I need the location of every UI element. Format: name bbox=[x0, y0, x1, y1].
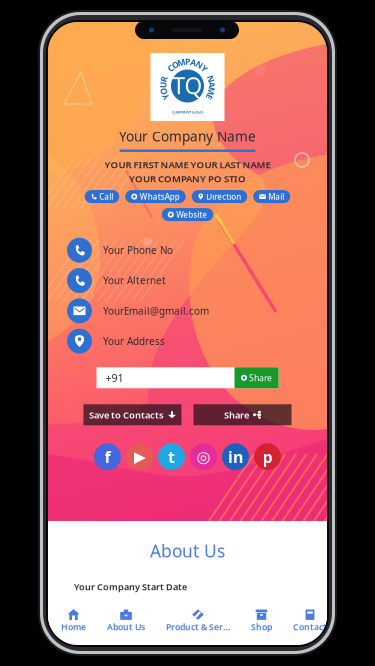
staticText: P bbox=[185, 56, 190, 67]
button[interactable]: Pinterest bbox=[254, 443, 281, 470]
staticText: A bbox=[209, 79, 215, 91]
staticText: YourEmail@gmail.com bbox=[103, 304, 209, 317]
staticText bbox=[166, 67, 168, 79]
staticText: Product & Services bbox=[166, 621, 230, 633]
staticText: O bbox=[160, 85, 167, 97]
staticText: Your Phone No bbox=[103, 243, 173, 257]
staticText: f bbox=[104, 446, 110, 468]
staticText: O bbox=[172, 59, 179, 70]
button[interactable]: YouTube bbox=[126, 443, 153, 470]
staticText: N bbox=[207, 73, 214, 84]
staticText: Shop bbox=[251, 621, 272, 633]
button[interactable]: Shop bbox=[251, 609, 272, 633]
button[interactable]: Home bbox=[61, 609, 86, 633]
button[interactable]: Mail bbox=[253, 190, 290, 203]
button[interactable]: Website bbox=[162, 208, 213, 221]
staticText: Your Company Name bbox=[119, 127, 256, 145]
staticText: Website bbox=[176, 209, 207, 220]
staticText: Call bbox=[99, 191, 113, 202]
staticText: Share bbox=[249, 372, 272, 384]
staticText: YOUR COMPANY PO STIO bbox=[129, 172, 246, 185]
staticText: Your Address bbox=[103, 334, 165, 348]
staticText: +91 bbox=[105, 370, 123, 385]
staticText: E bbox=[207, 91, 212, 103]
staticText: Save to Contacts bbox=[89, 408, 164, 421]
staticText: in bbox=[228, 446, 243, 468]
staticText: C bbox=[168, 63, 173, 74]
button[interactable]: About Us bbox=[107, 609, 145, 633]
button[interactable]: Direction bbox=[192, 190, 247, 203]
staticText: COMPANY LOGO bbox=[172, 109, 203, 115]
staticText: N bbox=[196, 59, 203, 70]
staticText: Mail bbox=[268, 191, 284, 202]
button[interactable]: Contact bbox=[293, 609, 327, 633]
button[interactable]: LinkedIn bbox=[222, 443, 249, 470]
button[interactable]: Share bbox=[193, 404, 291, 425]
button[interactable]: Product & Services bbox=[166, 609, 230, 633]
button[interactable]: Instagram bbox=[190, 443, 217, 470]
staticText: TQ bbox=[172, 70, 202, 101]
staticText: Your Company Start Date bbox=[74, 581, 187, 593]
staticText: ▶ bbox=[133, 447, 145, 466]
staticText bbox=[207, 67, 209, 79]
button[interactable]: Your Address bbox=[67, 326, 308, 356]
staticText: Contact bbox=[293, 621, 327, 633]
staticText: A bbox=[191, 56, 197, 68]
button[interactable]: Your Phone No bbox=[67, 235, 308, 265]
staticText: Share bbox=[224, 408, 249, 421]
staticText: Your Alternet bbox=[103, 274, 166, 287]
staticText: t bbox=[168, 446, 175, 468]
staticText: Y bbox=[163, 91, 168, 103]
staticText: Y bbox=[202, 62, 207, 74]
staticText: U bbox=[160, 79, 166, 91]
button[interactable]: WhatsApp bbox=[125, 190, 186, 203]
staticText: About Us bbox=[150, 539, 225, 563]
button[interactable]: Call bbox=[85, 190, 119, 203]
staticText: About Us bbox=[107, 621, 145, 633]
staticText: ◎ bbox=[196, 447, 210, 466]
staticText: Direction bbox=[206, 191, 241, 202]
staticText: M bbox=[207, 85, 215, 97]
staticText: M bbox=[177, 56, 185, 68]
button[interactable]: Save to Contacts bbox=[83, 404, 181, 425]
staticText: WhatsApp bbox=[140, 191, 180, 202]
button[interactable]: YourEmail@gmail.com bbox=[67, 296, 308, 326]
staticText: R bbox=[161, 73, 167, 85]
staticText: p bbox=[262, 446, 272, 468]
staticText: Home bbox=[61, 621, 86, 633]
button[interactable]: Share bbox=[234, 367, 278, 388]
button[interactable]: Facebook bbox=[94, 443, 121, 470]
button[interactable]: Your Alternet bbox=[67, 265, 308, 296]
button[interactable]: Twitter bbox=[158, 443, 185, 470]
staticText: YOUR FIRST NAME YOUR LAST NAME bbox=[104, 158, 270, 171]
